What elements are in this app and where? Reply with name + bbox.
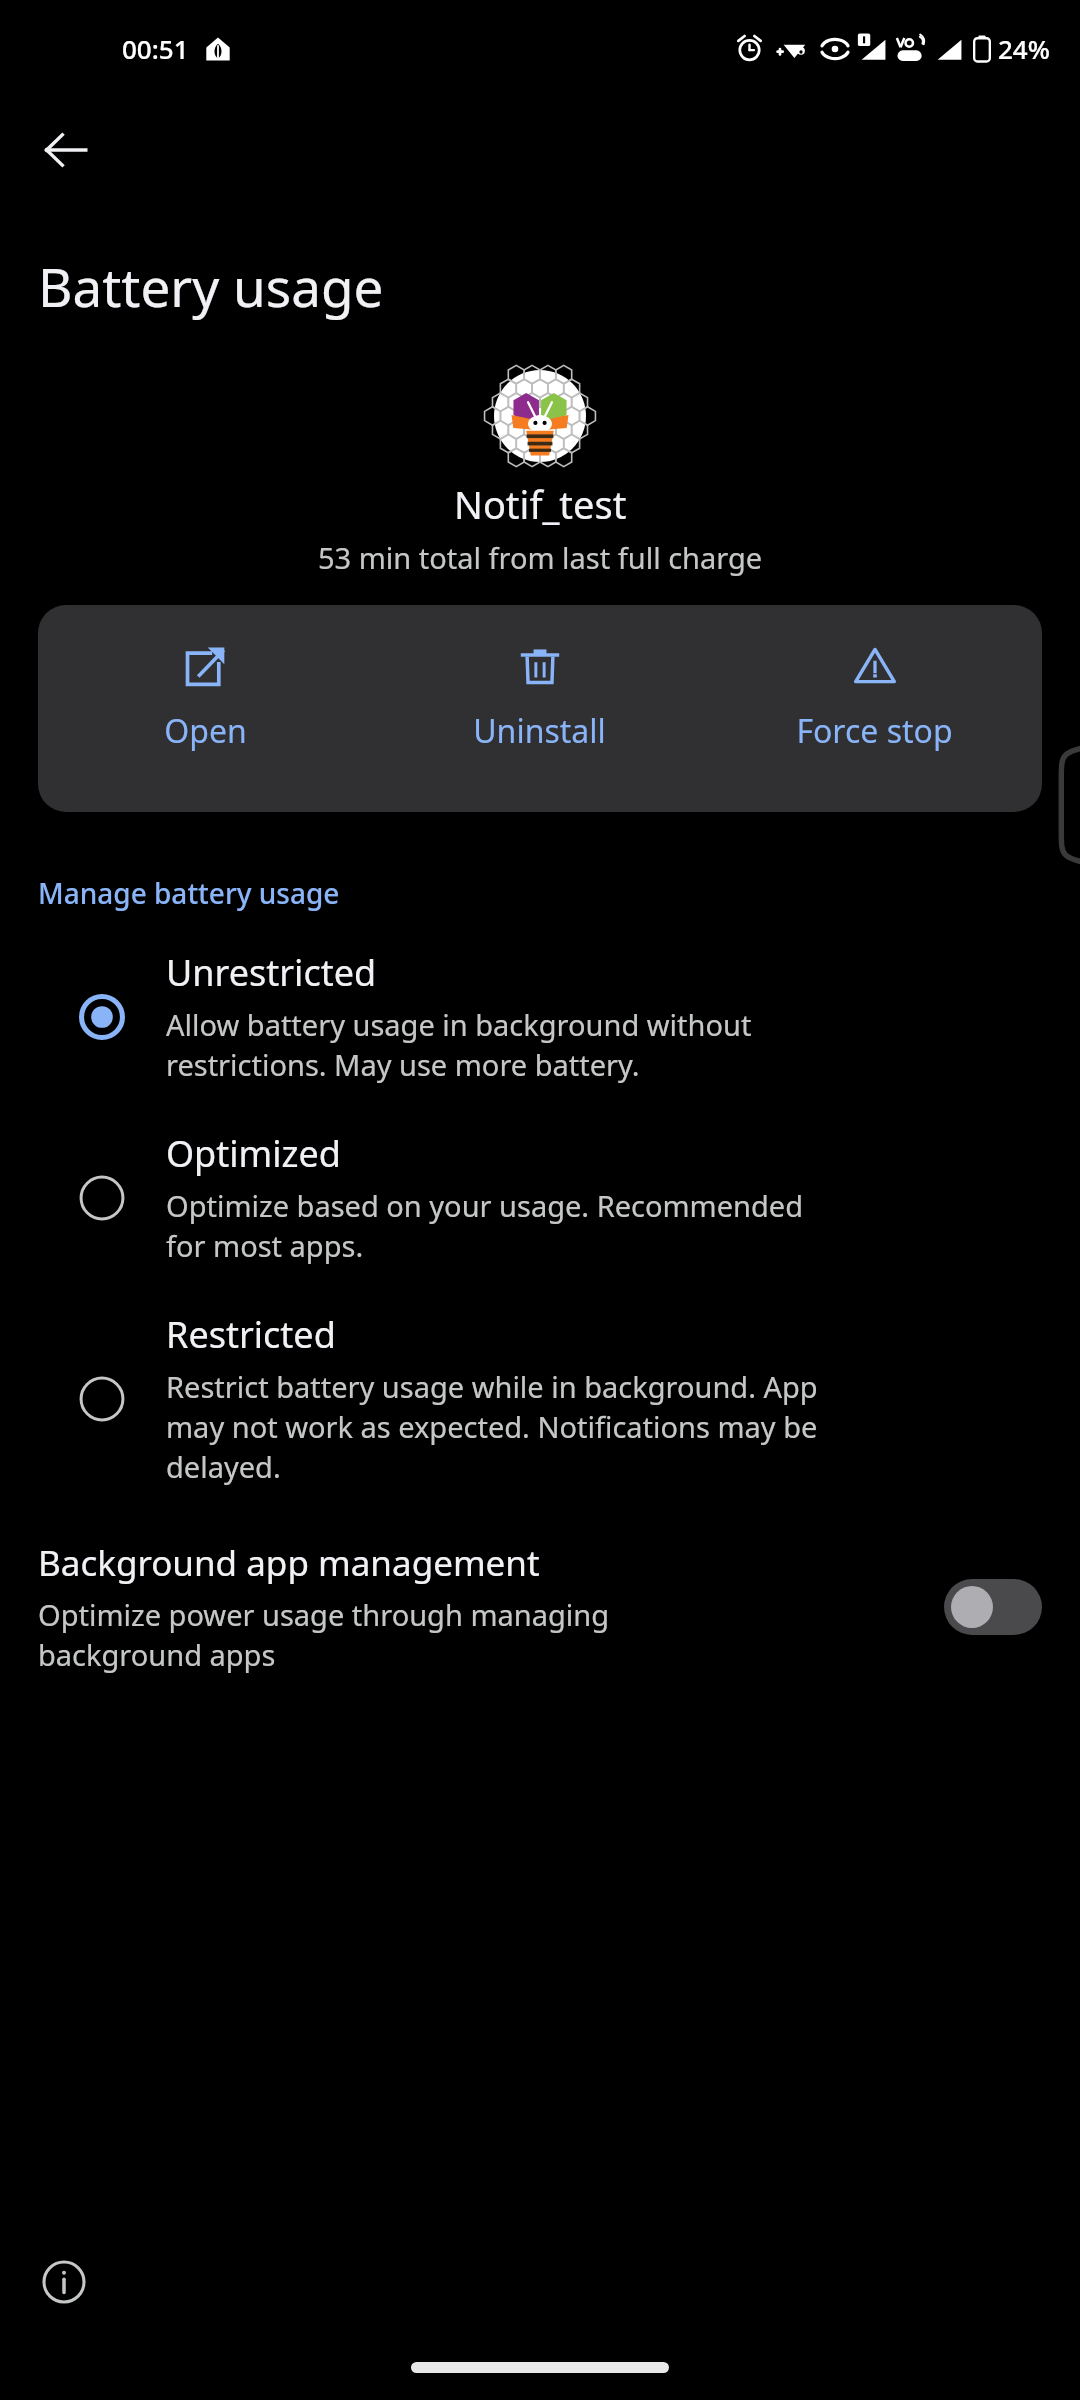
staticText: Uninstall [473,709,606,753]
staticText: 53 min total from last full charge [318,538,763,577]
staticText: Optimized [166,1129,341,1178]
staticText: 00:51 [122,31,189,66]
staticText: Optimize based on your usage. Recommende… [166,1186,804,1266]
staticText: Restrict battery usage while in backgrou… [166,1367,818,1487]
staticText: Background app management [38,1539,540,1587]
button[interactable]: Force stop [707,605,1042,812]
button[interactable]: Open [38,605,372,812]
button[interactable]: Background app management [0,1523,1080,1691]
staticText: Battery usage [38,250,384,322]
staticText: Restricted [166,1310,336,1359]
staticText: Allow battery usage in background withou… [166,1005,752,1085]
staticText: Manage battery usage [38,874,340,912]
staticText: 24% [998,31,1050,66]
staticText: Open [164,709,247,753]
button[interactable]: Optimized [0,1107,1080,1288]
button[interactable]: Uninstall [372,605,707,812]
button[interactable]: Restricted [0,1288,1080,1509]
button[interactable]: Background app management toggle [944,1579,1042,1635]
staticText: Unrestricted [166,948,377,997]
button[interactable]: Unrestricted [0,926,1080,1107]
staticText: Notif_test [454,478,627,530]
staticText: Force stop [796,709,953,753]
staticText: Optimize power usage through managing ba… [38,1595,610,1675]
button[interactable]: More information [22,2240,106,2324]
button[interactable]: Back [18,102,114,198]
